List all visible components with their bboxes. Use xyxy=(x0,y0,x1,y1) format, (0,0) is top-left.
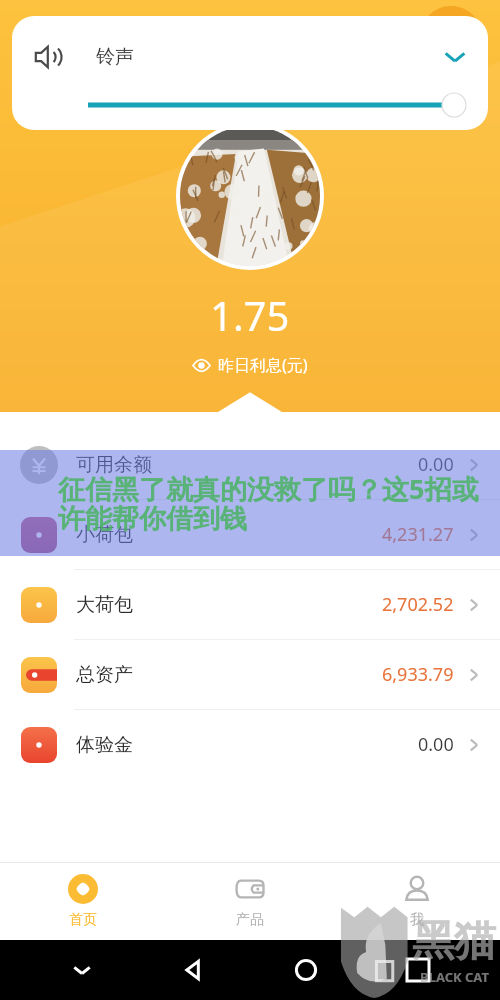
staticText: 0.00 xyxy=(418,452,454,477)
button[interactable]: 大荷包 xyxy=(0,570,500,639)
button[interactable]: Ringtone volume xyxy=(34,42,64,72)
staticText: 昨日利息(元) xyxy=(218,354,308,376)
button[interactable]: 可用余额 xyxy=(0,430,500,499)
staticText: 首页 xyxy=(69,911,97,929)
button[interactable]: 总资产 xyxy=(0,640,500,709)
staticText: BLACK CAT xyxy=(420,968,489,986)
staticText: 产品 xyxy=(236,911,264,929)
staticText: 小荷包 xyxy=(76,523,133,547)
staticText: 大荷包 xyxy=(76,593,133,617)
button[interactable]: Hide xyxy=(71,959,93,981)
button[interactable]: Home xyxy=(294,958,318,982)
staticText: 0.00 xyxy=(418,732,454,757)
button[interactable]: 征信黑了就真的没救了吗？这5招或许能帮你借到钱 xyxy=(0,450,500,556)
staticText: 2,702.52 xyxy=(382,592,454,617)
staticText: 黑猫 xyxy=(412,915,496,968)
staticText: 6,933.79 xyxy=(382,662,454,687)
staticText: 4,231.27 xyxy=(382,522,454,547)
button[interactable]: Recents xyxy=(407,959,429,981)
button[interactable]: 小荷包 xyxy=(0,500,500,569)
button[interactable]: Expand xyxy=(442,44,468,70)
staticText: 我 xyxy=(410,911,424,929)
button[interactable]: Back xyxy=(182,958,206,982)
staticText: 征信黑了就真的没救了吗？这5招或许能帮你借到钱 xyxy=(58,470,492,536)
button[interactable]: 首页 xyxy=(0,863,166,940)
button[interactable]: Message xyxy=(420,6,482,68)
button[interactable]: 体验金 xyxy=(0,710,500,779)
button[interactable]: Avatar xyxy=(180,126,320,266)
button[interactable]: 产品 xyxy=(166,863,333,940)
staticText: 体验金 xyxy=(76,733,133,757)
staticText: 铃声 xyxy=(96,45,134,69)
button[interactable]: 我 xyxy=(333,863,500,940)
staticText: 1.75 xyxy=(210,288,290,342)
staticText: 总资产 xyxy=(76,663,133,687)
staticText: 可用余额 xyxy=(76,453,152,477)
